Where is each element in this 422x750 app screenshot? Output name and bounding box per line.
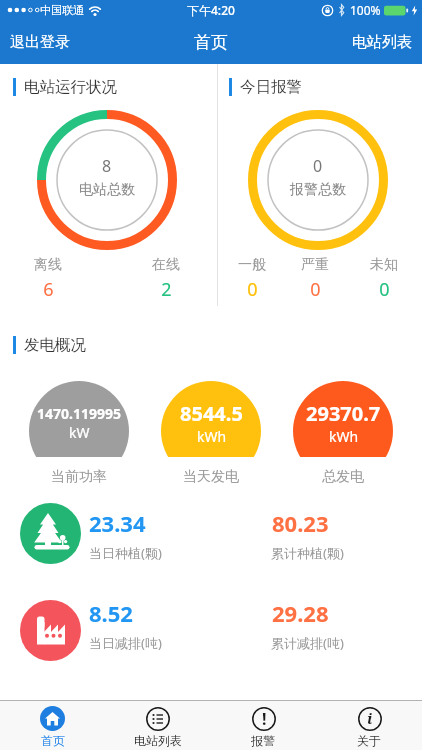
- staticText: 在线: [152, 256, 180, 274]
- staticText: 报警: [251, 733, 275, 748]
- staticText: 0: [310, 277, 321, 302]
- button[interactable]: i: [316, 700, 422, 750]
- staticText: 退出登录: [10, 33, 70, 52]
- staticText: i: [367, 708, 373, 728]
- button[interactable]: 电站列表: [105, 700, 210, 750]
- staticText: 关于: [357, 733, 381, 748]
- staticText: 23.34: [89, 508, 146, 538]
- button[interactable]: 首页: [0, 700, 105, 750]
- staticText: 当日减排(吨): [89, 634, 162, 652]
- staticText: 首页: [41, 733, 65, 748]
- staticText: 当前功率: [51, 468, 107, 486]
- staticText: 8.52: [89, 598, 133, 628]
- button[interactable]: 退出登录: [0, 23, 80, 62]
- staticText: 电站运行状况: [24, 77, 117, 97]
- staticText: 1470.119995: [37, 404, 122, 423]
- staticText: 累计减排(吨): [271, 634, 344, 652]
- staticText: 100%: [350, 2, 381, 18]
- staticText: 0: [313, 155, 323, 177]
- staticText: 报警总数: [290, 181, 346, 199]
- staticText: 电站总数: [79, 181, 135, 199]
- staticText: 首页: [194, 32, 228, 53]
- staticText: 当日种植(颗): [89, 544, 162, 562]
- staticText: 电站列表: [134, 733, 182, 748]
- staticText: 29370.7: [306, 400, 381, 427]
- button[interactable]: 电站列表: [342, 23, 422, 62]
- staticText: 0: [379, 277, 390, 302]
- staticText: 中国联通: [40, 3, 84, 17]
- staticText: 2: [161, 277, 172, 302]
- staticText: 今日报警: [240, 77, 302, 97]
- staticText: 总发电: [322, 468, 364, 486]
- staticText: !: [262, 708, 267, 730]
- staticText: 未知: [370, 256, 398, 274]
- staticText: 8: [102, 155, 112, 177]
- staticText: 80.23: [272, 508, 329, 538]
- staticText: 电站列表: [352, 33, 412, 52]
- staticText: 发电概况: [24, 335, 86, 355]
- staticText: kW: [69, 423, 90, 442]
- staticText: kWh: [329, 427, 359, 446]
- staticText: 离线: [34, 256, 62, 274]
- staticText: 29.28: [272, 598, 329, 628]
- button[interactable]: !: [210, 700, 316, 750]
- staticText: 0: [247, 277, 258, 302]
- staticText: 6: [43, 277, 54, 302]
- staticText: 严重: [301, 256, 329, 274]
- staticText: kWh: [197, 427, 227, 446]
- staticText: 当天发电: [183, 468, 239, 486]
- staticText: 8544.5: [180, 400, 243, 427]
- staticText: 一般: [238, 256, 266, 274]
- staticText: 累计种植(颗): [271, 544, 344, 562]
- staticText: 下午4:20: [187, 2, 235, 18]
